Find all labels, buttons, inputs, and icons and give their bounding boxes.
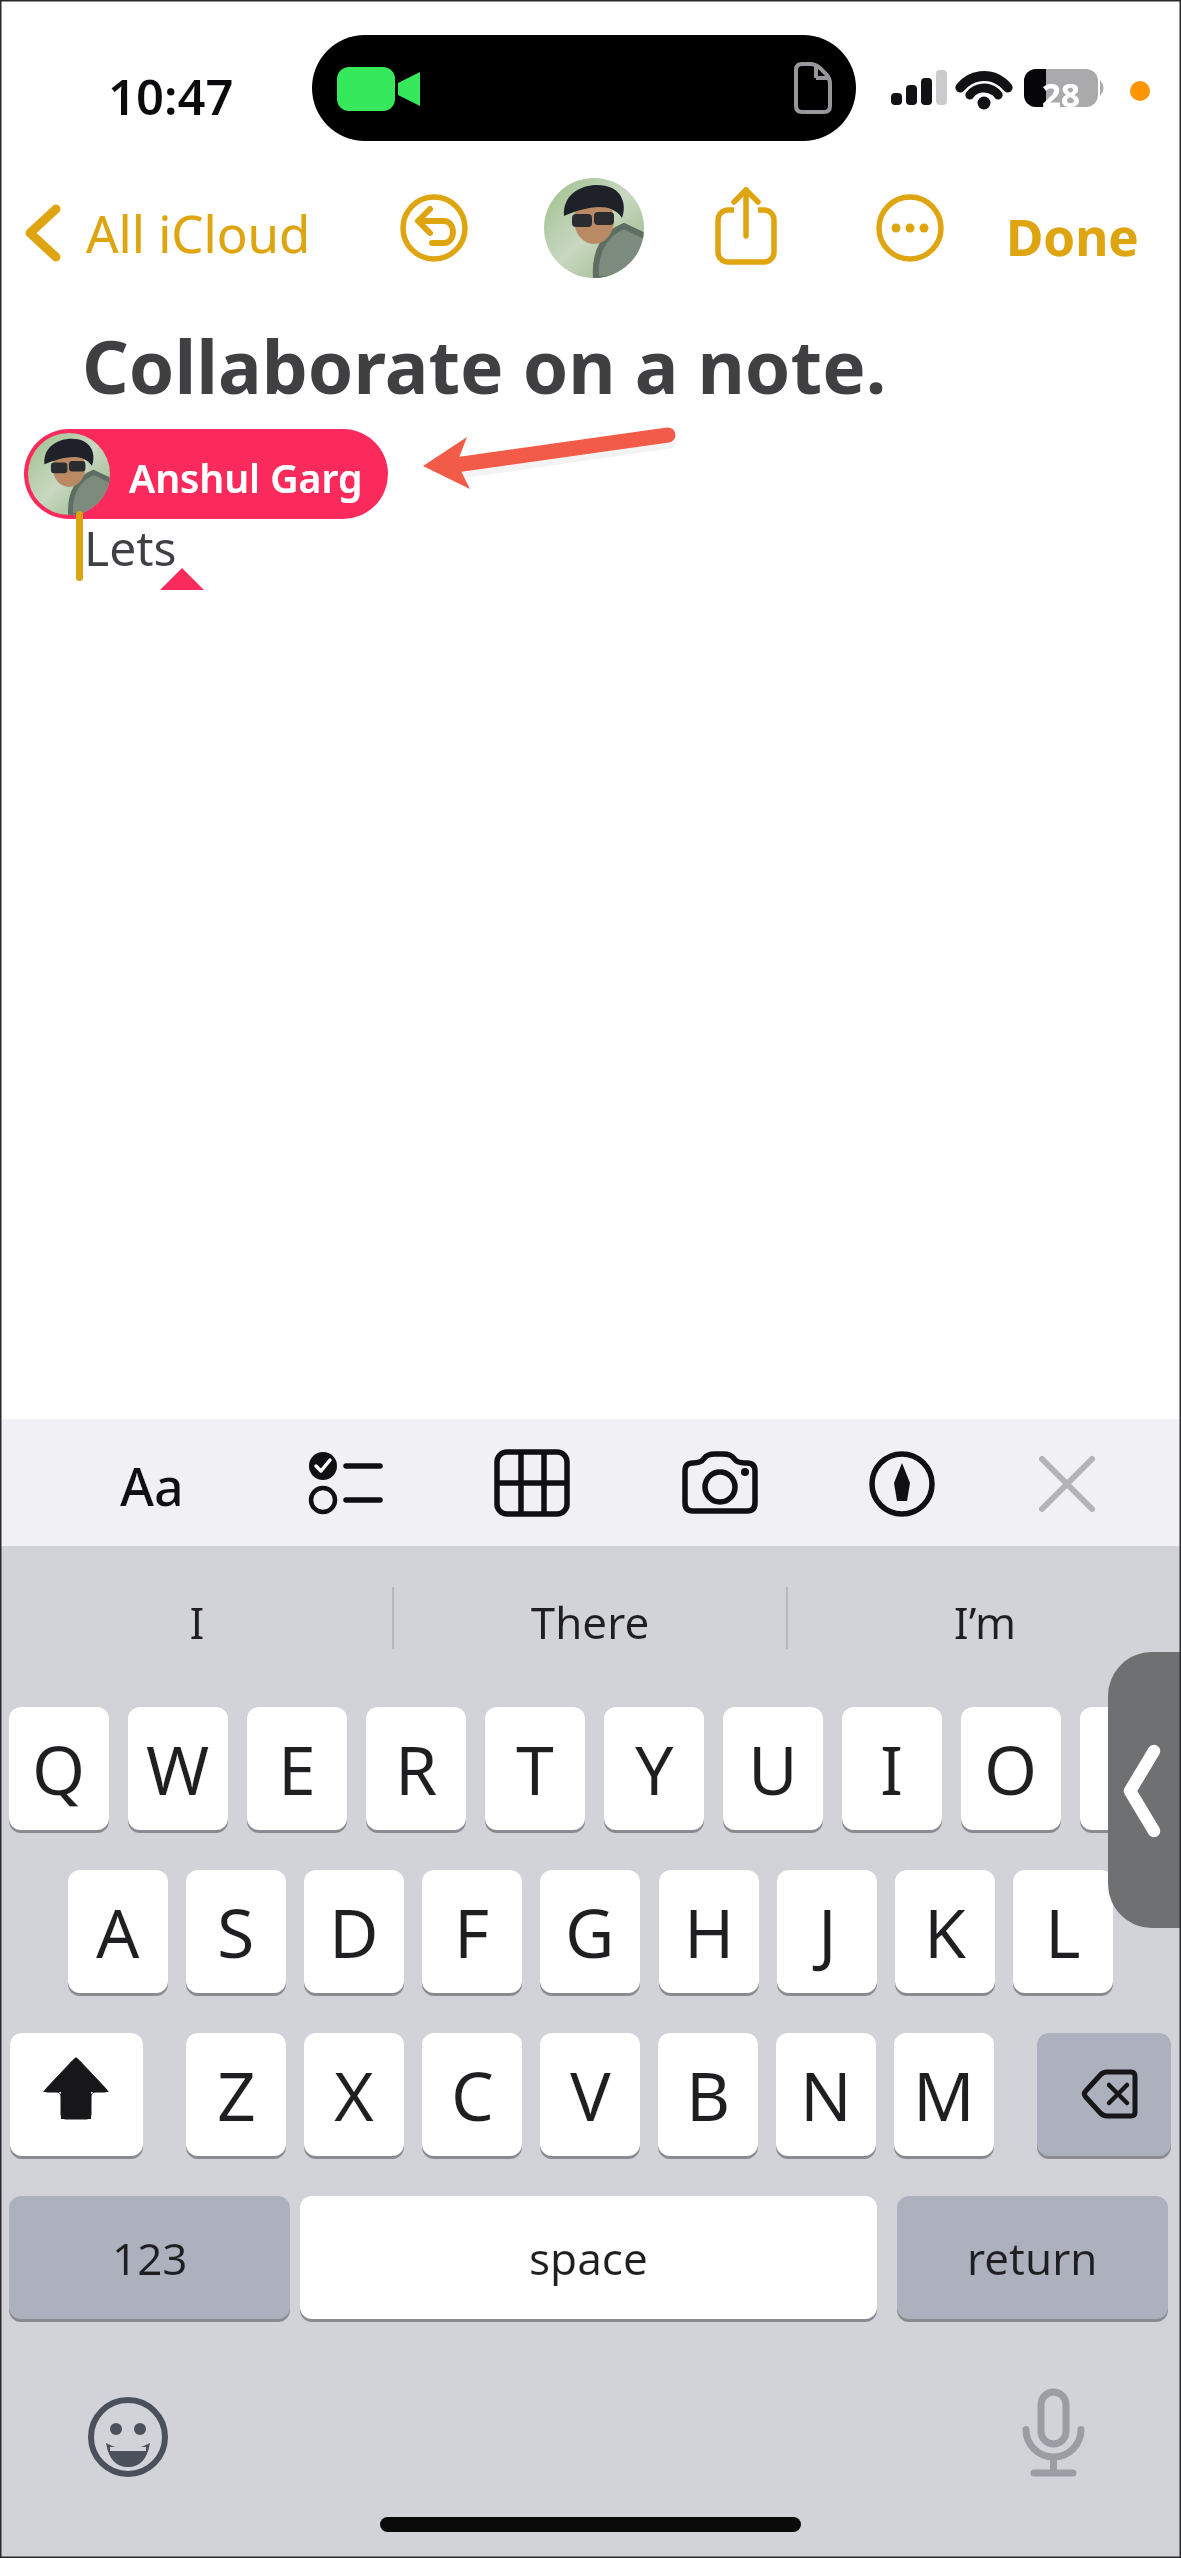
button[interactable]: return <box>897 2196 1168 2319</box>
button[interactable]: K <box>895 1870 995 1993</box>
button[interactable]: There <box>440 1592 740 1652</box>
button[interactable]: space <box>300 2196 877 2319</box>
button[interactable]: H <box>659 1870 759 1993</box>
button[interactable] <box>681 1449 761 1517</box>
button[interactable]: B <box>658 2033 758 2156</box>
button[interactable] <box>1037 2033 1171 2156</box>
staticText: K <box>924 1885 967 1978</box>
staticText: X <box>334 2048 374 2141</box>
button[interactable]: Aa <box>120 1450 184 1521</box>
button[interactable]: T <box>485 1707 585 1830</box>
button[interactable] <box>1014 2388 1090 2484</box>
button[interactable]: Y <box>604 1707 704 1830</box>
button[interactable] <box>1038 1455 1096 1513</box>
button[interactable]: Z <box>186 2033 286 2156</box>
button[interactable]: W <box>128 1707 228 1830</box>
button[interactable]: Anshul Garg <box>24 429 388 519</box>
staticText: return <box>967 2228 1098 2288</box>
staticText: C <box>451 2048 494 2141</box>
button[interactable] <box>304 1443 384 1523</box>
staticText: B <box>686 2048 731 2141</box>
staticText: Y <box>635 1722 674 1815</box>
button[interactable]: R <box>366 1707 466 1830</box>
staticText: W <box>146 1722 210 1815</box>
button[interactable] <box>88 2397 168 2477</box>
button[interactable]: V <box>540 2033 640 2156</box>
button[interactable]: A <box>68 1870 168 1993</box>
button[interactable]: 123 <box>9 2196 290 2319</box>
button[interactable]: P <box>1080 1707 1180 1830</box>
button[interactable] <box>1108 1652 1181 1928</box>
button[interactable]: U <box>723 1707 823 1830</box>
staticText: H <box>684 1885 735 1978</box>
button[interactable]: All iCloud <box>22 198 311 267</box>
button[interactable]: N <box>776 2033 876 2156</box>
button[interactable] <box>876 194 944 262</box>
button[interactable]: O <box>961 1707 1061 1830</box>
button[interactable]: I <box>842 1707 942 1830</box>
button[interactable]: I <box>47 1592 347 1652</box>
staticText: Anshul Garg <box>129 451 363 504</box>
staticText: N <box>800 2048 852 2141</box>
button[interactable]: M <box>894 2033 994 2156</box>
staticText: G <box>565 1885 615 1978</box>
staticText: 28 <box>1033 72 1089 117</box>
staticText: All iCloud <box>86 198 311 267</box>
button[interactable] <box>400 194 468 262</box>
staticText: M <box>913 2048 975 2141</box>
button[interactable]: D <box>304 1870 404 1993</box>
staticText: J <box>818 1885 837 1978</box>
staticText: I <box>880 1722 904 1815</box>
staticText: Collaborate on a note. <box>82 316 887 415</box>
staticText: R <box>395 1722 438 1815</box>
button[interactable]: X <box>304 2033 404 2156</box>
button[interactable]: J <box>777 1870 877 1993</box>
staticText: Q <box>32 1722 86 1815</box>
staticText: U <box>748 1722 798 1815</box>
button[interactable]: I’m <box>835 1592 1135 1652</box>
staticText: O <box>984 1722 1038 1815</box>
staticText: S <box>217 1885 255 1978</box>
staticText: 10:47 <box>108 63 234 130</box>
button[interactable]: E <box>247 1707 347 1830</box>
button[interactable]: G <box>540 1870 640 1993</box>
button[interactable]: F <box>422 1870 522 1993</box>
button[interactable]: L <box>1013 1870 1113 1993</box>
staticText: V <box>570 2048 611 2141</box>
button[interactable] <box>10 2033 143 2156</box>
button[interactable]: Q <box>9 1707 109 1830</box>
staticText: 123 <box>112 2228 188 2288</box>
staticText: T <box>516 1722 554 1815</box>
staticText: A <box>96 1885 140 1978</box>
staticText: space <box>529 2228 648 2288</box>
staticText: P <box>1109 1722 1151 1815</box>
button[interactable]: Done <box>1006 201 1139 270</box>
button[interactable] <box>706 178 786 278</box>
staticText: F <box>454 1885 490 1978</box>
staticText: L <box>1045 1885 1081 1978</box>
button[interactable] <box>494 1449 570 1517</box>
staticText: E <box>278 1722 316 1815</box>
staticText: Z <box>217 2048 256 2141</box>
button[interactable] <box>869 1451 935 1517</box>
button[interactable]: C <box>422 2033 522 2156</box>
staticText: Lets <box>84 515 177 580</box>
staticText: D <box>329 1885 379 1978</box>
button[interactable]: S <box>186 1870 286 1993</box>
